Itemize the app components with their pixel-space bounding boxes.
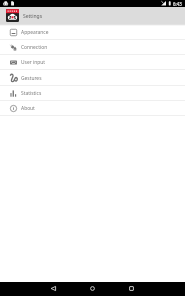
- staticText: Statistics: [21, 90, 42, 97]
- button[interactable]: Appearance: [0, 24, 185, 40]
- button[interactable]: Gestures: [0, 70, 185, 86]
- staticText: Connection: [21, 44, 48, 51]
- button[interactable]: Back: [48, 283, 59, 294]
- staticText: User input: [21, 59, 46, 66]
- button[interactable]: About: [0, 101, 185, 116]
- staticText: About: [21, 105, 35, 112]
- staticText: Gestures: [21, 75, 42, 82]
- staticText: Settings: [23, 13, 43, 20]
- button[interactable]: Statistics: [0, 86, 185, 101]
- button[interactable]: Connection: [0, 40, 185, 55]
- staticText: Appearance: [21, 29, 49, 36]
- button[interactable]: Recents: [126, 283, 137, 294]
- staticText: 6:43: [173, 1, 182, 7]
- button[interactable]: User input: [0, 55, 185, 70]
- button[interactable]: App icon: [6, 9, 19, 22]
- button[interactable]: Home: [87, 283, 98, 294]
